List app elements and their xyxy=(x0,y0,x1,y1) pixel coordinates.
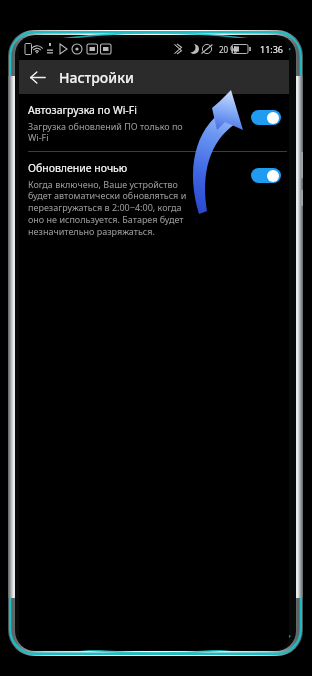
staticText: Когда включено, Ваше устройство будет ав… xyxy=(28,178,187,238)
button[interactable]: Обновление ночью xyxy=(248,164,284,186)
button[interactable]: Back xyxy=(22,62,52,92)
button[interactable]: Автозагрузка по Wi-Fi xyxy=(19,94,289,151)
staticText: Загрузка обновлений ПО только по Wi-Fi xyxy=(28,120,183,144)
staticText: 20 % xyxy=(219,44,237,55)
staticText: Обновление ночью xyxy=(28,161,128,175)
staticText: 11:36 xyxy=(260,43,284,55)
staticText: Автозагрузка по Wi-Fi xyxy=(28,103,137,117)
staticText: Настройки xyxy=(59,68,134,87)
button[interactable]: Автозагрузка по Wi-Fi xyxy=(248,106,284,128)
button[interactable]: Обновление ночью xyxy=(19,152,289,245)
